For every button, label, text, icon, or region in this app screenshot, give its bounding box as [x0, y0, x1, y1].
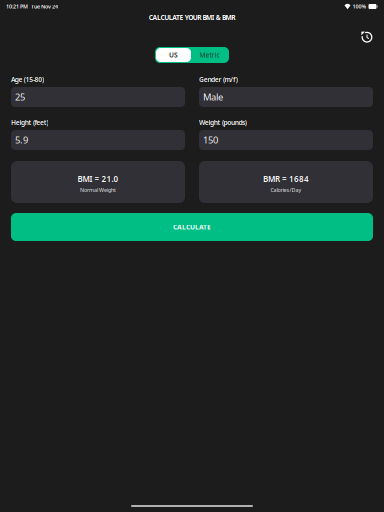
button[interactable]: Male — [199, 87, 373, 107]
staticText: Age (15-80) — [11, 75, 44, 84]
staticText: Height (feet) — [11, 118, 48, 127]
staticText: CALCULATE — [173, 223, 211, 231]
staticText: Tue Nov 24 — [31, 3, 58, 10]
staticText: BMR = 1684 — [263, 174, 309, 184]
button[interactable]: CALCULATE — [11, 213, 373, 241]
staticText: Metric — [199, 51, 219, 59]
staticText: 150 — [203, 134, 218, 146]
staticText: Weight (pounds) — [199, 118, 247, 127]
staticText: US — [169, 51, 178, 59]
button[interactable]: 5.9 — [11, 130, 185, 150]
button[interactable]: Metric — [191, 48, 228, 62]
staticText: CALCULATE YOUR BMI & BMR — [149, 13, 235, 22]
button[interactable]: 150 — [199, 130, 373, 150]
staticText: 25 — [15, 91, 25, 103]
staticText: Normal Weight — [80, 186, 116, 193]
staticText: Male — [203, 91, 223, 103]
staticText: BMI = 21.0 — [77, 174, 118, 184]
staticText: Gender (m/f) — [199, 75, 238, 84]
button[interactable]: US — [156, 48, 191, 62]
button[interactable]: History — [355, 26, 379, 48]
staticText: 5.9 — [15, 134, 28, 146]
staticText: Calories/Day — [270, 186, 301, 193]
staticText: 100% — [352, 3, 366, 10]
staticText: 10:21 PM — [6, 3, 28, 10]
button[interactable]: 25 — [11, 87, 185, 107]
